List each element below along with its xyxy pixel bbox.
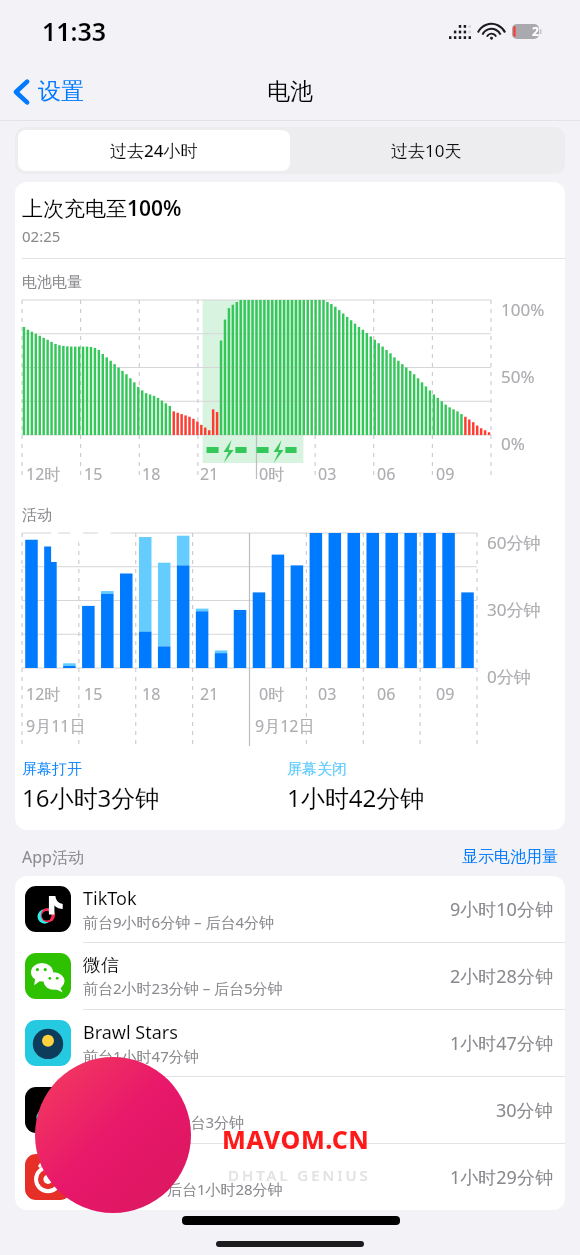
button[interactable]: 显示电池用量 xyxy=(462,847,558,867)
staticText: 06 xyxy=(377,683,396,705)
staticText: 9月12日 xyxy=(255,715,315,737)
staticText: 15 xyxy=(84,463,103,485)
staticText: 12时 xyxy=(26,463,61,485)
staticText: 微信 xyxy=(83,954,119,977)
staticText: 活动 xyxy=(22,506,52,525)
staticText: 前台9小时6分钟 – 后台4分钟 xyxy=(83,912,275,932)
staticText: M xyxy=(66,509,116,580)
staticText: DHTAL GENIUS xyxy=(228,1165,371,1185)
staticText: 过去10天 xyxy=(391,139,462,162)
staticText: 电池 xyxy=(267,77,313,106)
staticText: 09 xyxy=(436,683,455,705)
staticText: App活动 xyxy=(22,846,462,868)
staticText: 0时 xyxy=(259,683,285,705)
staticText: 屏幕打开 xyxy=(22,760,82,779)
staticText: 100% xyxy=(501,298,545,320)
staticText: 09 xyxy=(436,463,455,485)
staticText: 18 xyxy=(142,683,161,705)
staticText: 过去24小时 xyxy=(110,139,198,162)
staticText: 1小时42分钟 xyxy=(287,781,425,814)
staticText: 02:25 xyxy=(22,226,61,246)
staticText: 16小时3分钟 xyxy=(22,781,160,814)
staticText: 屏幕关闭 xyxy=(287,760,347,779)
staticText: 0% xyxy=(501,432,525,454)
staticText: 21 xyxy=(200,683,219,705)
staticText: MAVOM.CN xyxy=(222,1122,370,1156)
staticText: 15 xyxy=(84,683,103,705)
staticText: 12时 xyxy=(26,683,61,705)
staticText: 1小时29分钟 xyxy=(450,1165,553,1190)
button[interactable]: 设置 xyxy=(0,71,96,112)
staticText: 前台2小时23分钟 – 后台5分钟 xyxy=(83,978,283,998)
staticText: 设置 xyxy=(38,77,84,106)
staticText: TikTok xyxy=(83,886,137,911)
staticText: 2 xyxy=(532,23,539,39)
staticText: 50% xyxy=(501,365,535,387)
button[interactable]: 抖音 xyxy=(15,1077,565,1144)
button[interactable]: 过去10天 xyxy=(290,130,562,171)
staticText: 03 xyxy=(318,683,337,705)
button[interactable]: 过去24小时 xyxy=(18,130,290,171)
staticText: 9小时10分钟 xyxy=(450,897,553,922)
staticText: 03 xyxy=(318,463,337,485)
staticText: 前台27分钟 – 后台3分钟 xyxy=(83,1112,245,1132)
staticText: 21 xyxy=(200,463,219,485)
button[interactable]: TikTok xyxy=(15,876,565,943)
staticText: 1小时47分钟 xyxy=(450,1031,553,1056)
staticText: 30分钟 xyxy=(487,598,541,620)
staticText: 9月11日 xyxy=(26,715,86,737)
staticText: 0时 xyxy=(259,463,285,485)
staticText: 11:33 xyxy=(42,14,107,48)
staticText: 抖音 xyxy=(83,1088,119,1111)
staticText: 06 xyxy=(377,463,396,485)
staticText: 30分钟 xyxy=(496,1098,553,1123)
staticText: 60分钟 xyxy=(487,531,541,553)
staticText: 电池电量 xyxy=(22,273,82,292)
button[interactable]: 微信 xyxy=(15,943,565,1010)
staticText: i xyxy=(48,515,62,575)
staticText: 0分钟 xyxy=(487,665,531,687)
button[interactable]: 网易云音乐 xyxy=(15,1144,565,1210)
staticText: 上次充电至100% xyxy=(22,194,182,223)
button[interactable]: Brawl Stars xyxy=(15,1010,565,1077)
staticText: 18 xyxy=(142,463,161,485)
staticText: 2小时28分钟 xyxy=(450,964,553,989)
staticText: 前台1小时47分钟 xyxy=(83,1046,199,1066)
staticText: 显示电池用量 xyxy=(462,847,558,867)
staticText: 前台1分钟 – 后台1小时28分钟 xyxy=(83,1179,283,1199)
staticText: Brawl Stars xyxy=(83,1020,178,1045)
